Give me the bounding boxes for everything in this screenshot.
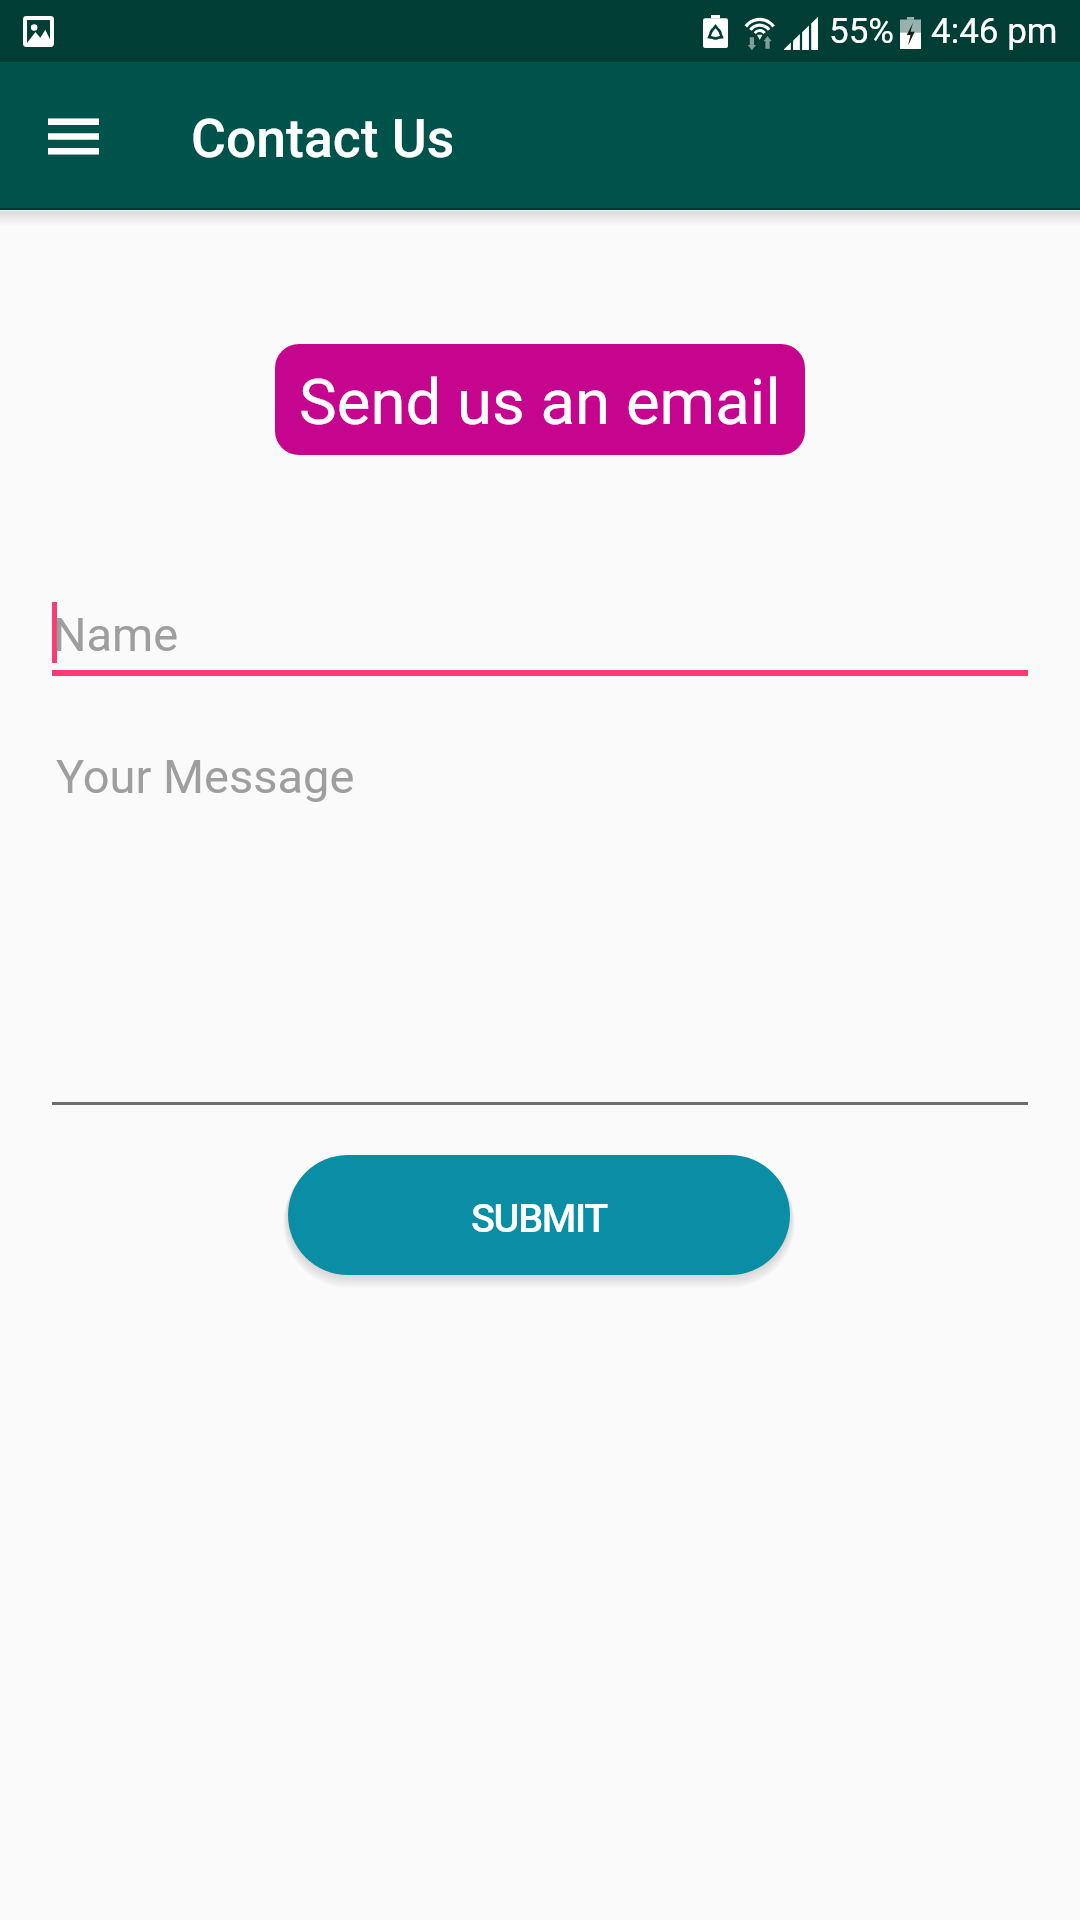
button[interactable]: Send us an email bbox=[275, 344, 805, 455]
staticText: 55% bbox=[829, 11, 894, 52]
button[interactable]: SUBMIT bbox=[288, 1155, 790, 1275]
staticText: Send us an email bbox=[299, 365, 781, 439]
button[interactable]: Open navigation menu bbox=[40, 103, 106, 169]
button[interactable]: Your Message bbox=[0, 736, 1080, 1108]
staticText: Contact Us bbox=[191, 107, 455, 170]
button[interactable]: Name bbox=[0, 588, 1080, 678]
staticText: 4:46 pm bbox=[931, 11, 1058, 52]
staticText: Your Message bbox=[56, 749, 355, 804]
staticText: Name bbox=[53, 607, 179, 662]
staticText: SUBMIT bbox=[471, 1195, 608, 1241]
